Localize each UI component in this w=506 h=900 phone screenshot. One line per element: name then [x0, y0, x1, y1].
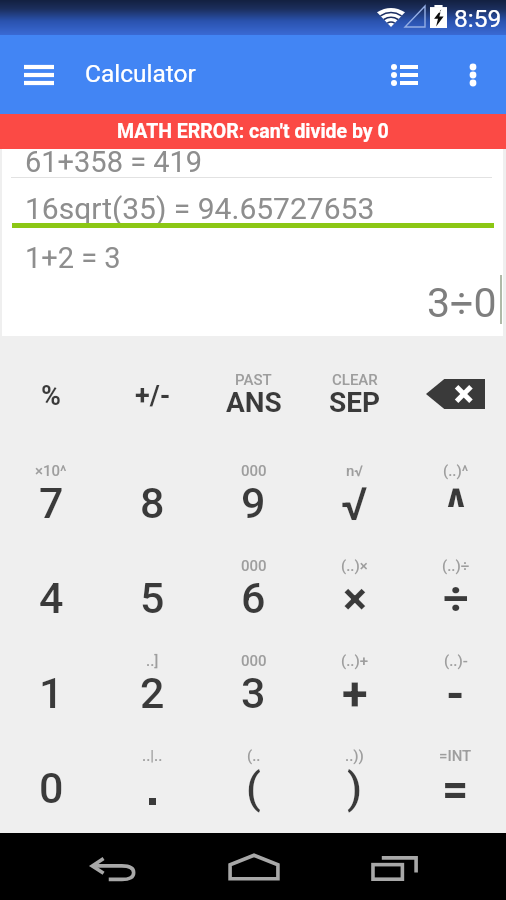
staticText: 16sqrt(35) = 94.65727653: [25, 191, 375, 226]
staticText: CLEAR: [332, 371, 378, 389]
staticText: ×: [343, 572, 367, 625]
staticText: =: [442, 762, 469, 816]
button[interactable]: %: [0, 336, 102, 431]
staticText: PAST: [235, 371, 272, 389]
staticText: ÷: [443, 572, 469, 625]
staticText: MATH ERROR: can't divide by 0: [117, 120, 389, 143]
staticText: 3: [241, 668, 266, 718]
button[interactable]: n√: [304, 431, 405, 526]
staticText: +/-: [135, 380, 171, 412]
staticText: ANS: [226, 386, 282, 419]
staticText: 000: [241, 557, 267, 575]
staticText: 000: [241, 652, 267, 670]
staticText: n√: [346, 462, 363, 480]
button[interactable]: More options: [450, 52, 496, 98]
button[interactable]: 16sqrt(35) = 94.65727653: [2, 191, 503, 235]
staticText: 9: [241, 478, 266, 528]
button[interactable]: 0: [0, 716, 102, 811]
button[interactable]: Backspace: [405, 336, 506, 431]
staticText: ..]: [146, 652, 159, 670]
button[interactable]: 61+358 = 419: [2, 145, 503, 189]
staticText: (..)+: [341, 652, 369, 670]
staticText: ×10^: [35, 462, 67, 480]
staticText: 3÷0: [427, 279, 497, 327]
staticText: (..)^: [443, 462, 469, 480]
button[interactable]: 8: [102, 431, 203, 526]
button[interactable]: Back: [78, 844, 146, 894]
button[interactable]: ×10^: [0, 431, 102, 526]
button[interactable]: ..)): [304, 716, 405, 811]
staticText: 8: [140, 478, 165, 528]
staticText: 61+358 = 419: [25, 145, 203, 179]
staticText: Calculator: [85, 59, 196, 88]
button[interactable]: ..]: [102, 621, 203, 716]
staticText: ): [347, 763, 363, 813]
staticText: 5: [140, 573, 165, 623]
staticText: ..|..: [142, 747, 163, 765]
button[interactable]: (..)-: [405, 621, 506, 716]
staticText: 0: [39, 763, 64, 813]
button[interactable]: (..)÷: [405, 526, 506, 621]
button[interactable]: (..: [203, 716, 304, 811]
staticText: 1+2 = 3: [25, 241, 121, 275]
button[interactable]: (..)×: [304, 526, 405, 621]
staticText: 6: [241, 573, 266, 623]
staticText: (..)÷: [442, 557, 470, 575]
staticText: +: [342, 666, 368, 721]
button[interactable]: 000: [203, 526, 304, 621]
button[interactable]: CLEAR: [304, 336, 405, 431]
button[interactable]: 1+2 = 3: [2, 241, 503, 285]
staticText: (: [246, 763, 261, 813]
staticText: ..)): [345, 747, 364, 765]
button[interactable]: 5: [102, 526, 203, 621]
button[interactable]: Home: [220, 842, 288, 892]
staticText: (..)-: [444, 652, 468, 670]
staticText: (..: [247, 747, 261, 765]
button[interactable]: =INT: [405, 716, 506, 811]
staticText: 000: [241, 462, 267, 480]
button[interactable]: (..)+: [304, 621, 405, 716]
staticText: ∧: [443, 477, 469, 514]
button[interactable]: History: [380, 52, 426, 98]
button[interactable]: 000: [203, 431, 304, 526]
staticText: 4: [39, 573, 64, 623]
staticText: %: [41, 380, 61, 412]
staticText: 7: [39, 478, 64, 528]
staticText: √: [341, 477, 368, 531]
button[interactable]: 4: [0, 526, 102, 621]
button[interactable]: PAST: [203, 336, 304, 431]
button[interactable]: Recent apps: [362, 843, 430, 893]
staticText: 1: [39, 668, 64, 718]
button[interactable]: Open navigation drawer: [9, 45, 69, 105]
button[interactable]: +/-: [102, 336, 203, 431]
staticText: (..)×: [341, 557, 368, 575]
button[interactable]: ..|..: [102, 716, 203, 811]
staticText: -: [446, 666, 465, 721]
button[interactable]: 000: [203, 621, 304, 716]
staticText: =INT: [439, 747, 472, 765]
staticText: 8:59: [454, 4, 502, 33]
button[interactable]: 1: [0, 621, 102, 716]
button[interactable]: (..)^: [405, 431, 506, 526]
staticText: SEP: [329, 386, 381, 419]
staticText: 2: [140, 668, 165, 718]
